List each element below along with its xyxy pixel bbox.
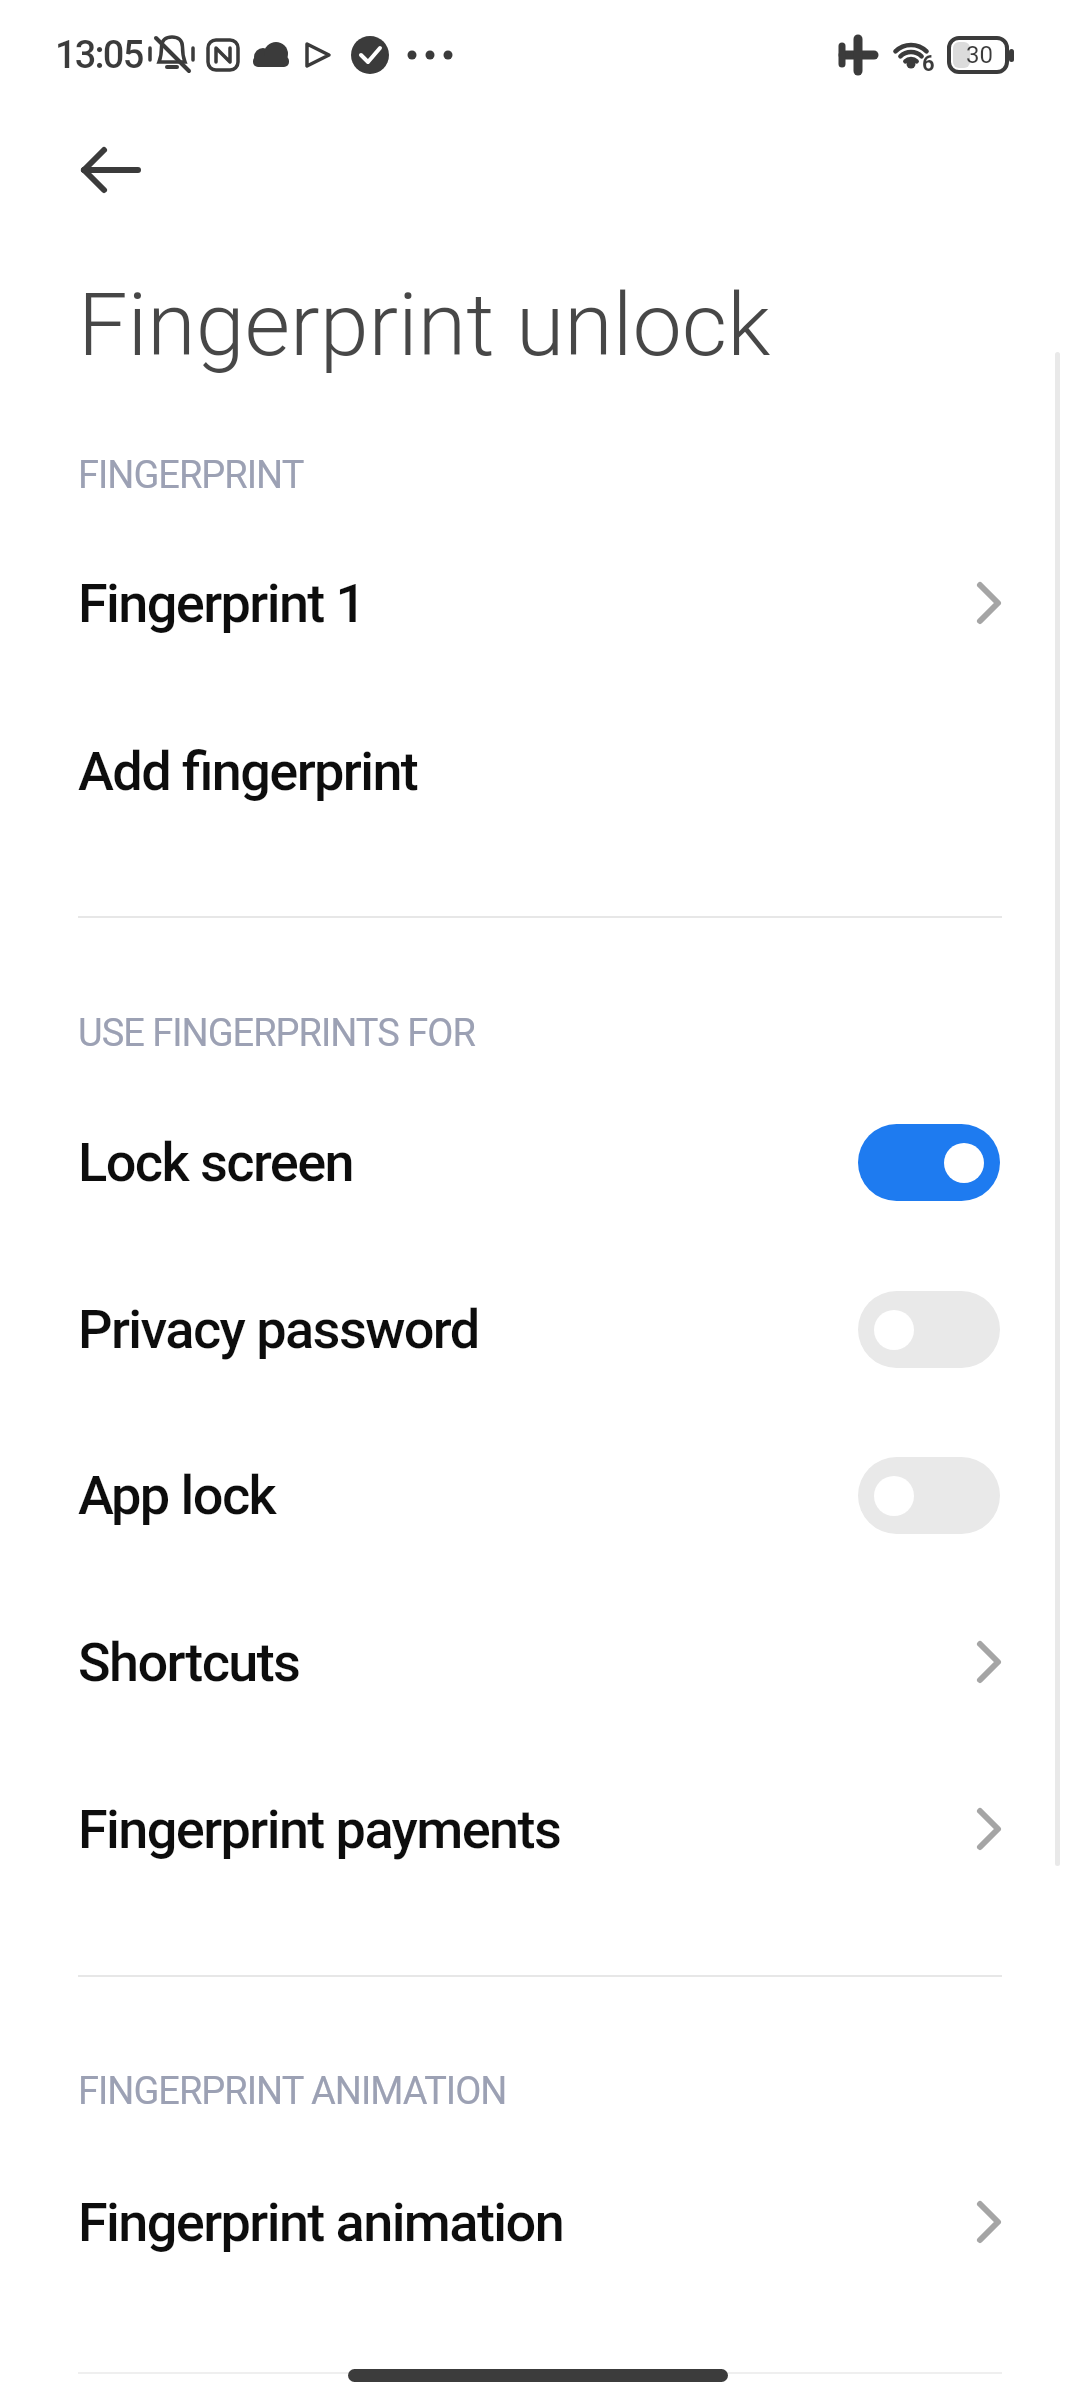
button[interactable]: Fingerprint animation [0,2152,1080,2292]
button[interactable]: Fingerprint payments [0,1759,1080,1899]
staticText: App lock [78,1464,276,1527]
button[interactable]: App lock [0,1425,1080,1565]
button[interactable]: Add fingerprint [0,701,1080,841]
button[interactable]: Fingerprint 1 [0,533,1080,673]
staticText: 30 [966,41,993,69]
button[interactable]: Lock screen [0,1092,1080,1232]
staticText: 13:05 [55,33,143,78]
staticText: Fingerprint unlock [78,273,771,376]
staticText: Lock screen [78,1131,353,1194]
staticText: Add fingerprint [78,740,418,803]
staticText: Shortcuts [78,1631,300,1694]
staticText: Privacy password [78,1298,479,1361]
staticText: USE FINGERPRINTS FOR [78,1011,475,1056]
staticText: Fingerprint 1 [78,572,365,635]
button[interactable]: Shortcuts [0,1592,1080,1732]
button[interactable]: Privacy password [0,1259,1080,1399]
button[interactable] [62,122,158,218]
staticText: Fingerprint animation [78,2191,564,2254]
staticText: FINGERPRINT [78,453,304,498]
staticText: FINGERPRINT ANIMATION [78,2069,507,2114]
staticText: 6 [922,51,935,77]
staticText: Fingerprint payments [78,1798,561,1861]
